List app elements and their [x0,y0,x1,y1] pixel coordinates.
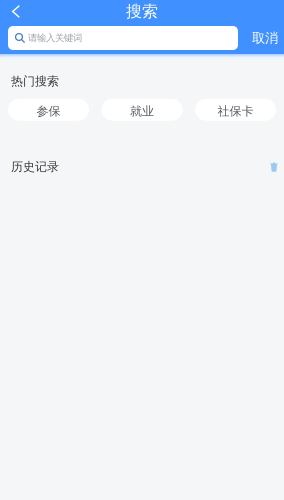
button[interactable]: 参保 [8,99,89,121]
staticText: 热门搜索 [11,74,59,89]
button[interactable]: Clear history [264,159,278,175]
staticText: 社保卡 [217,104,253,119]
staticText: 历史记录 [11,159,59,174]
staticText: 请输入关键词 [28,32,82,44]
button[interactable]: 就业 [101,99,182,121]
staticText: 取消 [252,30,278,46]
staticText: 就业 [130,104,154,119]
staticText: 参保 [36,104,60,119]
button[interactable]: Back [0,1,32,22]
button[interactable]: 取消 [246,26,284,50]
button[interactable]: 社保卡 [195,99,276,121]
staticText: 搜索 [126,2,158,21]
